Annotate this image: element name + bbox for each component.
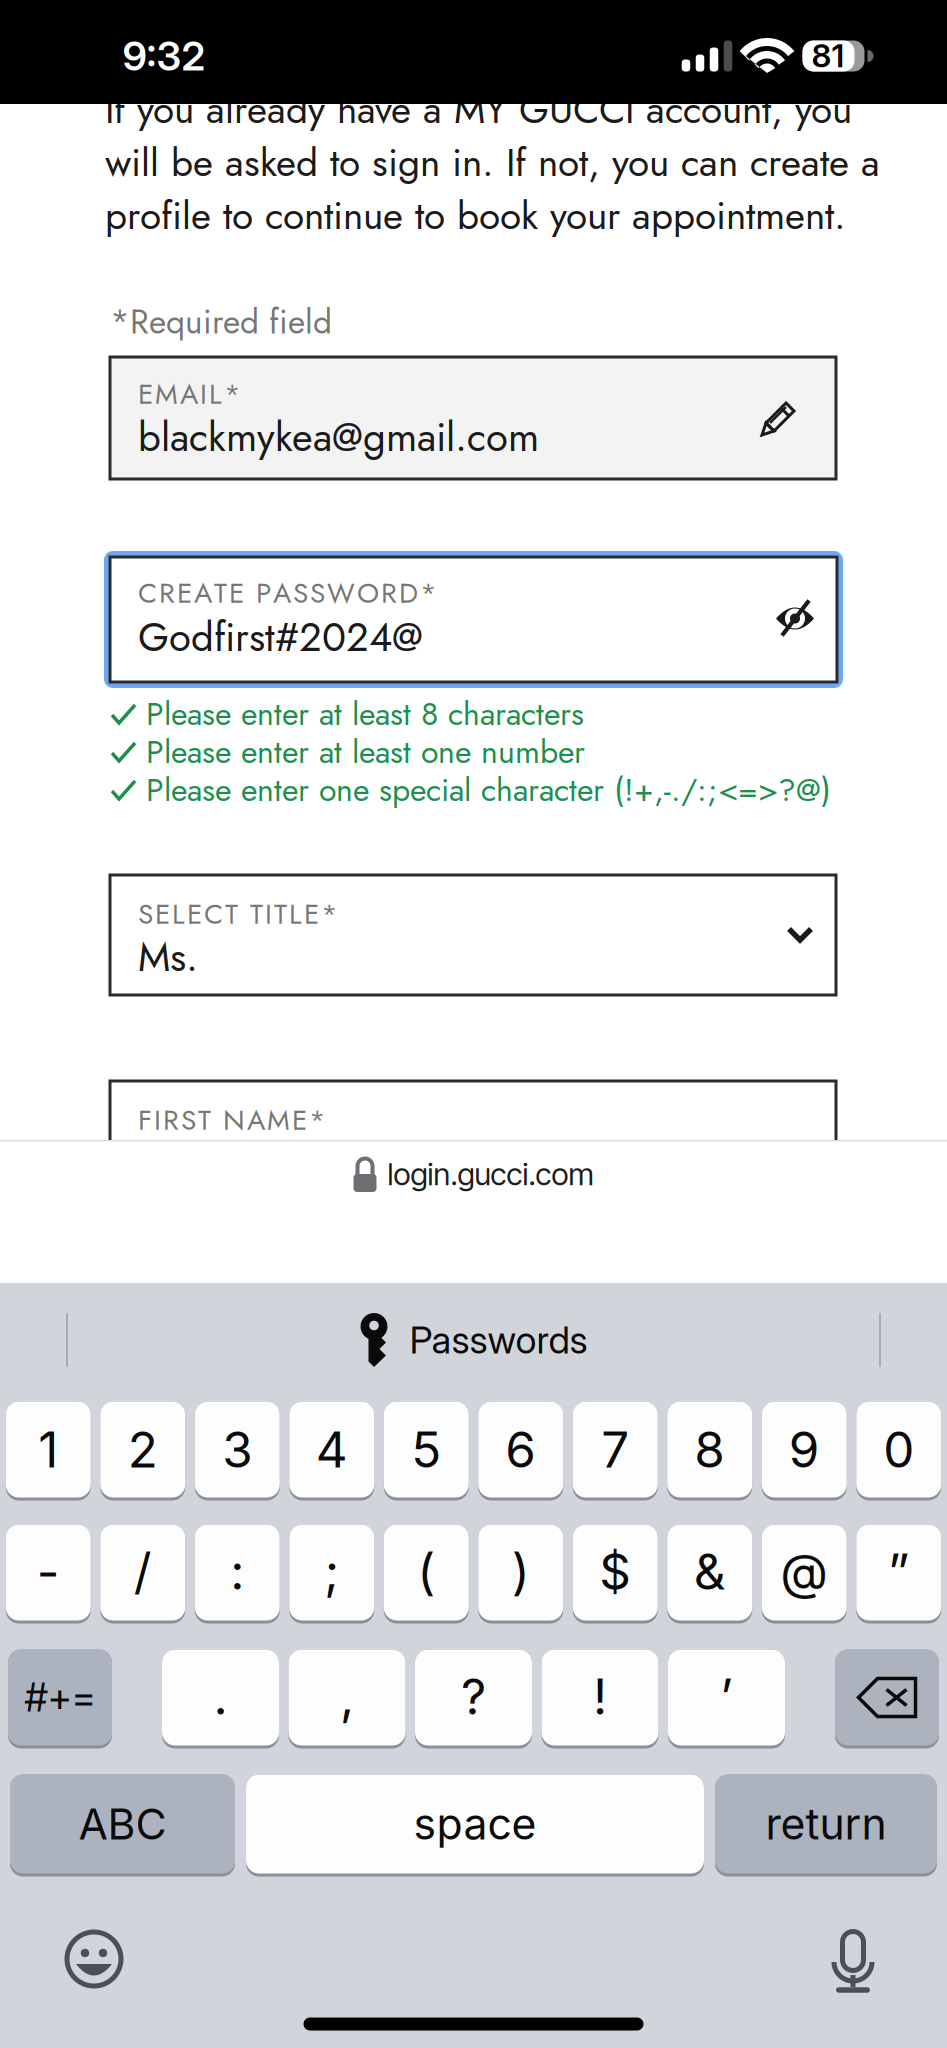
staticText: 4 <box>316 1420 348 1479</box>
staticText: Please enter at least one number <box>146 729 585 775</box>
button[interactable]: space <box>246 1773 704 1875</box>
button[interactable]: : <box>195 1523 280 1622</box>
staticText: profile to continue to book your appoint… <box>105 188 846 243</box>
staticText: S E L E C T T I T L E * <box>138 894 338 934</box>
staticText: 7 <box>601 1420 629 1479</box>
staticText: space <box>413 1798 536 1850</box>
staticText: ) <box>512 1542 530 1601</box>
staticText: $ <box>599 1542 631 1601</box>
staticText: ” <box>888 1542 910 1601</box>
button[interactable]: ! <box>541 1648 658 1747</box>
button[interactable]: C R E A T E P A S S W O R D * <box>104 551 843 688</box>
staticText: #+= <box>24 1674 95 1721</box>
button[interactable]: login.gucci.com <box>353 1155 593 1192</box>
staticText: ( <box>417 1542 435 1601</box>
button[interactable]: F I R S T N A M E * <box>110 1081 836 1201</box>
staticText: If you already have a MY GUCCI account, … <box>105 82 852 137</box>
button[interactable]: #+= <box>8 1648 112 1747</box>
button[interactable]: 6 <box>478 1400 563 1499</box>
button[interactable]: Emoji <box>64 1929 124 1989</box>
button[interactable]: ” <box>856 1523 941 1622</box>
button[interactable]: @ <box>762 1523 847 1622</box>
button[interactable]: ABC <box>10 1773 235 1875</box>
button[interactable]: - <box>6 1523 91 1622</box>
button[interactable]: ) <box>478 1523 563 1622</box>
staticText: 0 <box>883 1420 914 1479</box>
button[interactable]: E M A I L * <box>110 357 836 479</box>
button[interactable]: . <box>162 1648 279 1747</box>
staticText: *Required field <box>110 298 332 346</box>
staticText: 1 <box>38 1420 58 1479</box>
button[interactable]: $ <box>573 1523 658 1622</box>
staticText: 6 <box>505 1420 536 1479</box>
staticText: Godfirst#2024@ <box>138 608 423 666</box>
button[interactable]: 3 <box>195 1400 280 1499</box>
button[interactable]: return <box>715 1773 937 1875</box>
button[interactable]: ? <box>415 1648 532 1747</box>
staticText: Please enter one special character (!+,-… <box>146 767 831 813</box>
button[interactable]: Dictate <box>830 1928 876 1994</box>
button[interactable]: 7 <box>573 1400 658 1499</box>
staticText: will be asked to sign in. If not, you ca… <box>105 135 880 190</box>
staticText: 9 <box>789 1420 820 1479</box>
staticText: / <box>134 1542 152 1601</box>
button[interactable]: 5 <box>384 1400 469 1499</box>
button[interactable]: / <box>100 1523 185 1622</box>
staticText: : <box>230 1542 244 1601</box>
staticText: 3 <box>222 1420 252 1479</box>
staticText: , <box>340 1667 354 1726</box>
staticText: . <box>213 1667 227 1726</box>
button[interactable]: ( <box>384 1523 469 1622</box>
button[interactable]: 8 <box>667 1400 752 1499</box>
staticText: 5 <box>411 1420 441 1479</box>
staticText: E M A I L * <box>138 374 241 414</box>
button[interactable]: S E L E C T T I T L E * <box>110 875 836 995</box>
staticText: 8 <box>694 1420 725 1479</box>
staticText: & <box>694 1542 726 1601</box>
button[interactable]: 9 <box>762 1400 847 1499</box>
staticText: return <box>765 1798 886 1850</box>
staticText: Ms. <box>138 928 198 986</box>
staticText: 81 <box>811 36 844 75</box>
staticText: 2 <box>128 1420 158 1479</box>
staticText: Passwords <box>409 1317 587 1363</box>
staticText: - <box>37 1542 60 1601</box>
button[interactable]: 1 <box>6 1400 91 1499</box>
button[interactable]: & <box>667 1523 752 1622</box>
button[interactable]: Delete <box>835 1648 939 1747</box>
staticText: ABC <box>78 1798 166 1850</box>
staticText: login.gucci.com <box>387 1155 593 1192</box>
staticText: ; <box>324 1542 339 1601</box>
staticText: Please enter at least 8 characters <box>146 691 584 737</box>
button[interactable]: Passwords <box>360 1313 587 1367</box>
staticText: 9:32 <box>122 32 205 80</box>
button[interactable]: 0 <box>856 1400 941 1499</box>
staticText: ’ <box>720 1667 733 1726</box>
staticText: F I R S T N A M E * <box>138 1100 326 1140</box>
button[interactable]: , <box>288 1648 405 1747</box>
staticText: ! <box>593 1667 607 1726</box>
staticText: C R E A T E P A S S W O R D * <box>138 573 437 613</box>
staticText: ? <box>461 1667 486 1726</box>
button[interactable]: 4 <box>289 1400 374 1499</box>
button[interactable]: 2 <box>100 1400 185 1499</box>
staticText: blackmykea@gmail.com <box>138 408 539 466</box>
staticText: @ <box>780 1542 828 1601</box>
button[interactable]: ; <box>289 1523 374 1622</box>
button[interactable]: ’ <box>668 1648 785 1747</box>
